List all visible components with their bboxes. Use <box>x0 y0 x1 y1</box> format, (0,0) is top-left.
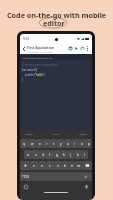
button[interactable]: k <box>74 150 81 159</box>
button[interactable]: More options <box>85 44 90 53</box>
staticText: f <box>49 153 51 157</box>
staticText: com/kotlin/ClassName .kt <box>22 56 53 59</box>
button[interactable]: o <box>78 139 85 148</box>
button[interactable]: g <box>53 150 60 159</box>
button[interactable]: Undo <box>79 44 85 53</box>
staticText: u <box>67 142 69 146</box>
button[interactable]: Save <box>67 44 73 53</box>
staticText: // declare your function here <box>22 63 59 67</box>
staticText: r <box>46 142 48 146</box>
staticText: g <box>56 153 58 157</box>
staticText: m <box>77 164 80 168</box>
staticText: println <box>25 73 34 77</box>
staticText: j <box>70 153 71 157</box>
button[interactable]: d <box>39 150 46 159</box>
staticText: k <box>77 153 79 157</box>
staticText: ?123 <box>22 175 29 179</box>
button[interactable]: f <box>46 150 53 159</box>
staticText: p <box>88 142 90 146</box>
button[interactable]: e <box>36 139 43 148</box>
button[interactable]: Voice input <box>83 184 89 190</box>
staticText: } <box>22 78 24 82</box>
button[interactable]: j <box>67 150 74 159</box>
staticText: ) <box>44 73 45 77</box>
staticText: n <box>71 164 73 168</box>
staticText: x <box>41 164 43 168</box>
staticText: h <box>63 153 65 157</box>
button[interactable]: t <box>50 139 57 148</box>
staticText: ( <box>34 73 35 77</box>
button[interactable]: v <box>54 161 61 170</box>
button[interactable]: a <box>24 150 32 159</box>
button[interactable]: Emoji <box>23 184 29 190</box>
button[interactable]: p <box>85 139 92 148</box>
staticText: b <box>64 164 66 168</box>
button[interactable]: x <box>38 161 46 170</box>
staticText: 9:41 <box>23 37 30 41</box>
staticText: v <box>57 164 59 168</box>
button[interactable]: l <box>81 150 88 159</box>
button[interactable]: s <box>32 150 39 159</box>
button[interactable]: z <box>30 161 38 170</box>
button[interactable]: ?123 <box>20 172 31 181</box>
button[interactable]: Back <box>21 44 27 53</box>
staticText: d <box>42 153 44 157</box>
button[interactable]: i <box>71 139 78 148</box>
button[interactable]: n <box>68 161 75 170</box>
staticText: s <box>35 153 37 157</box>
staticText: o <box>81 142 83 146</box>
staticText: y <box>60 142 62 146</box>
button[interactable]: Backspace <box>82 161 92 170</box>
staticText: First Application <box>27 45 54 50</box>
button[interactable]: u <box>64 139 71 148</box>
staticText: i <box>74 142 75 146</box>
staticText: c <box>49 164 51 168</box>
staticText: main <box>27 68 34 72</box>
button[interactable]: w <box>28 139 36 148</box>
button[interactable]: m <box>75 161 82 170</box>
button[interactable]: h <box>60 150 67 159</box>
staticText: fun <box>22 68 27 72</box>
staticText: l <box>84 153 85 157</box>
staticText: Last edited 2 mins ago <box>27 50 53 53</box>
button[interactable]: r <box>43 139 50 148</box>
staticText: w <box>31 142 34 146</box>
staticText: t <box>53 142 55 146</box>
staticText: q <box>23 142 25 146</box>
button[interactable]: Run <box>73 44 79 53</box>
staticText: Code on-the-go with mobile <box>7 10 107 20</box>
button[interactable]: Shift <box>20 161 30 170</box>
staticText: editor <box>43 18 65 28</box>
button[interactable]: b <box>61 161 68 170</box>
staticText: "hello" <box>35 73 44 77</box>
staticText: () { <box>34 68 38 72</box>
staticText: a <box>27 153 29 157</box>
button[interactable]: q <box>20 139 28 148</box>
button[interactable]: c <box>46 161 54 170</box>
staticText: z <box>33 164 35 168</box>
button[interactable]: Enter <box>79 172 92 181</box>
button[interactable]: y <box>57 139 64 148</box>
staticText: e <box>39 142 41 146</box>
